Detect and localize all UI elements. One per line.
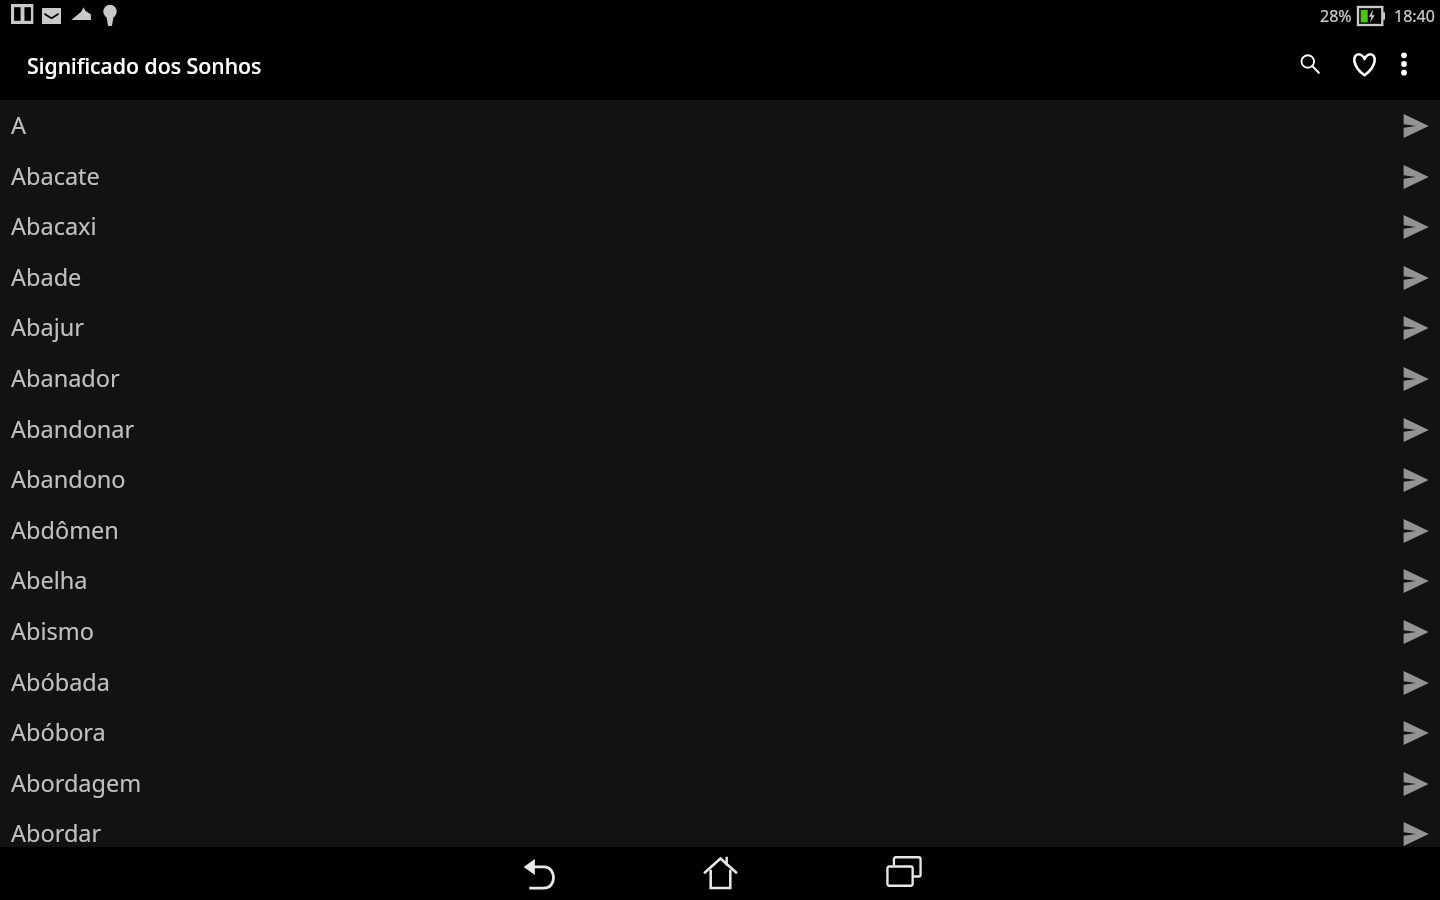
staticText: Abdômen — [11, 514, 119, 546]
staticText: Abandonar — [11, 413, 135, 445]
button[interactable]: Recents — [842, 847, 963, 900]
button[interactable]: Abandono — [0, 454, 1440, 505]
staticText: 18:40 — [1394, 5, 1435, 27]
button[interactable]: Abanador — [0, 353, 1440, 404]
button[interactable]: Abandonar — [0, 404, 1440, 455]
staticText: Abóbora — [11, 716, 106, 748]
staticText: Abismo — [11, 615, 94, 647]
staticText: Abade — [11, 261, 82, 293]
staticText: Abóbada — [11, 666, 110, 698]
staticText: Abandono — [11, 463, 126, 495]
staticText: Abacate — [11, 160, 100, 192]
staticText: Abelha — [11, 564, 88, 596]
button[interactable]: More options — [1378, 31, 1430, 100]
button[interactable]: Abordar — [0, 808, 1440, 859]
staticText: Significado dos Sonhos — [27, 51, 262, 80]
staticText: Abacaxi — [11, 210, 97, 242]
button[interactable]: Home — [660, 847, 781, 900]
button[interactable]: Search — [1283, 31, 1337, 100]
button[interactable]: Abacate — [0, 151, 1440, 202]
button[interactable]: Abacaxi — [0, 201, 1440, 252]
staticText: Abordagem — [11, 767, 142, 799]
button[interactable]: Abade — [0, 252, 1440, 303]
staticText: Abanador — [11, 362, 120, 394]
staticText: A — [11, 109, 27, 141]
staticText: Abordar — [11, 817, 102, 849]
staticText: 28% — [1320, 5, 1352, 27]
staticText: Abajur — [11, 311, 84, 343]
button[interactable]: Abajur — [0, 302, 1440, 353]
button[interactable]: Abdômen — [0, 505, 1440, 556]
button[interactable]: Abordagem — [0, 758, 1440, 809]
button[interactable]: Back — [479, 847, 600, 900]
button[interactable]: Abóbora — [0, 707, 1440, 758]
button[interactable]: A — [0, 100, 1440, 151]
button[interactable]: Abismo — [0, 606, 1440, 657]
button[interactable]: Abóbada — [0, 657, 1440, 708]
button[interactable]: Abelha — [0, 555, 1440, 606]
button[interactable]: Favorites — [1337, 31, 1391, 100]
